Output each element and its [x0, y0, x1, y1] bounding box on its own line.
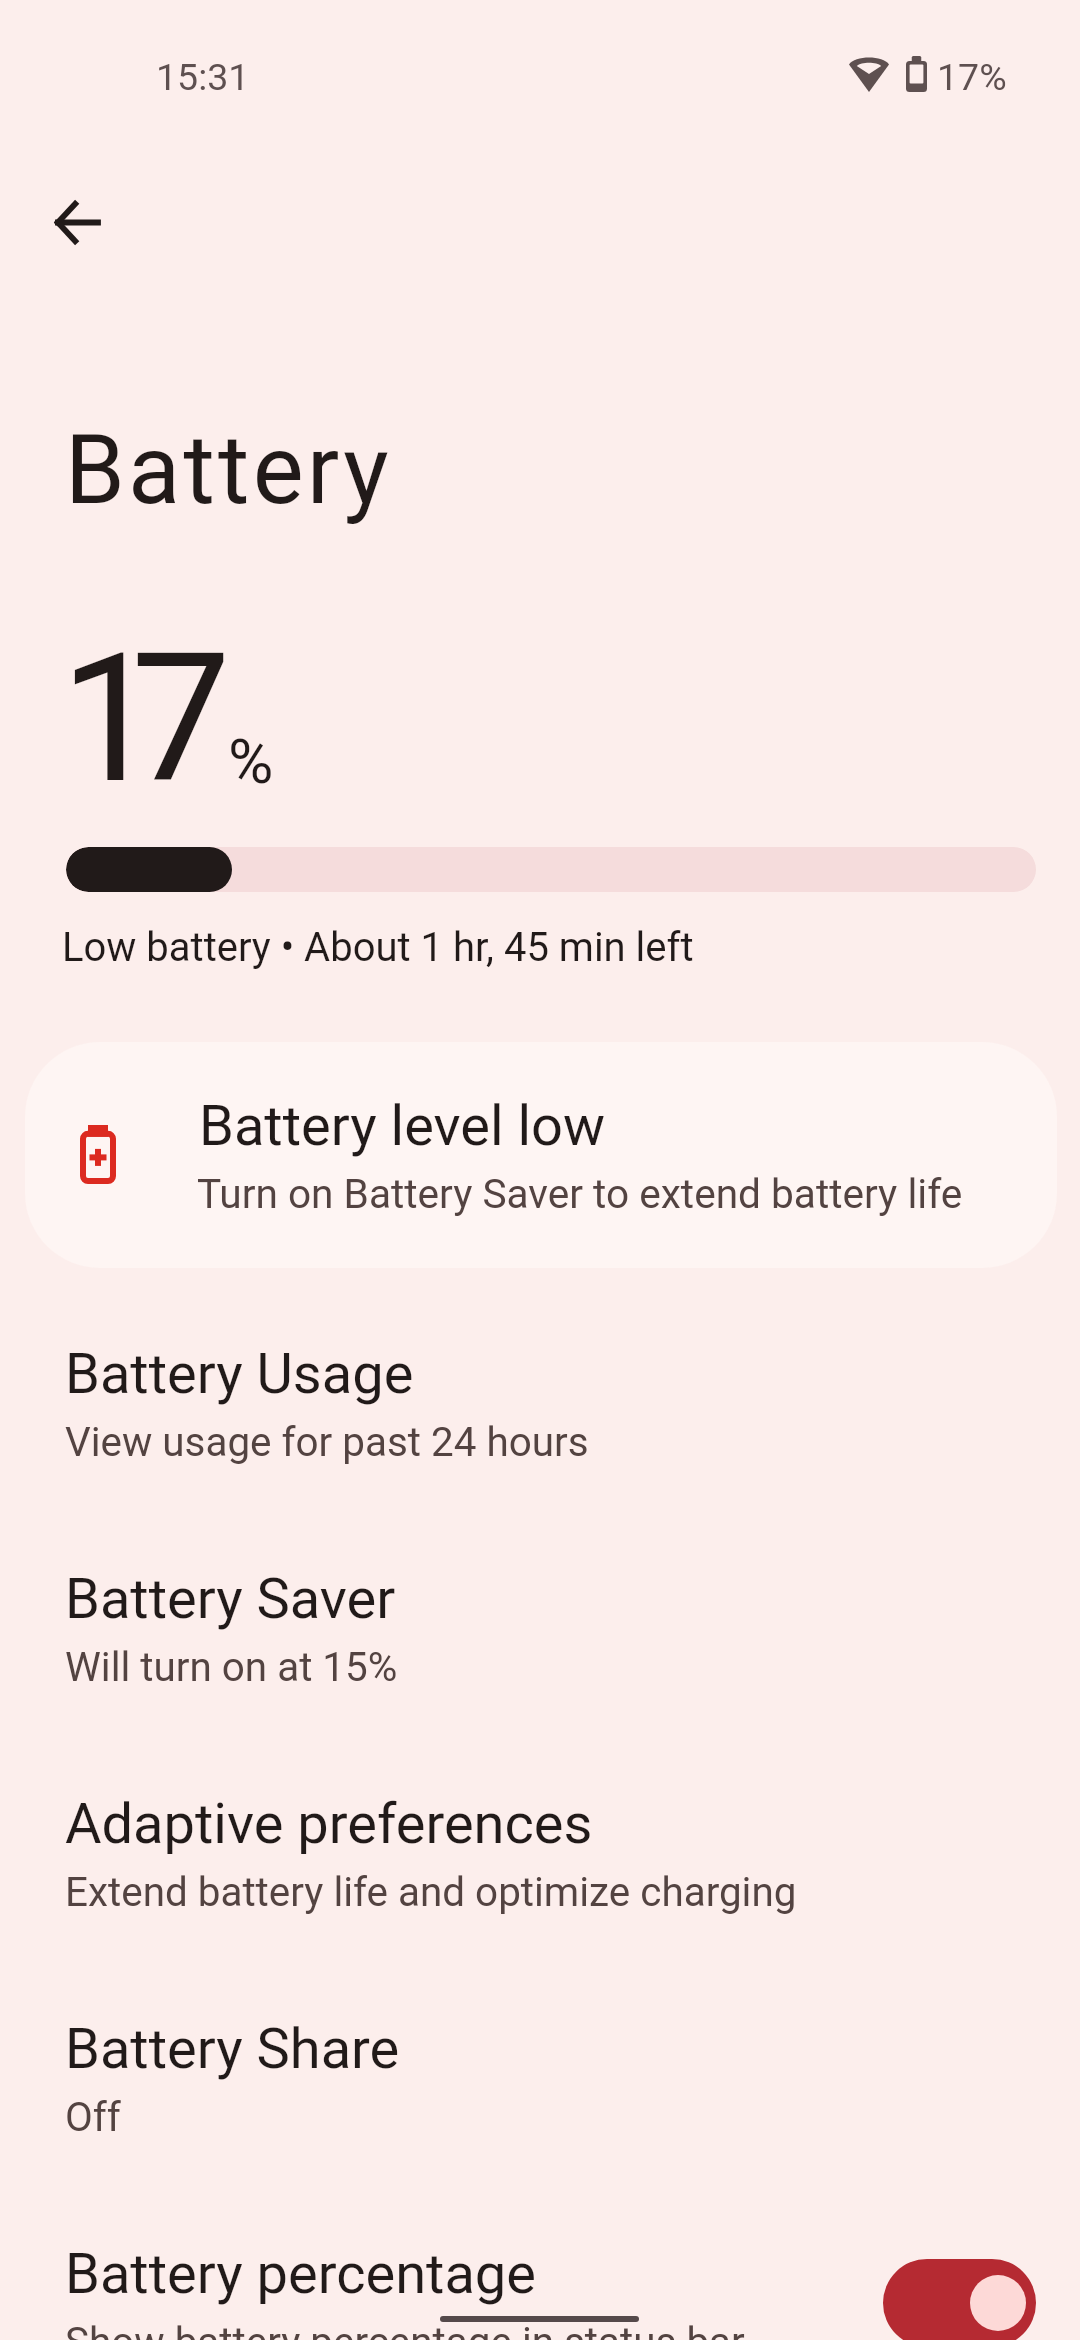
- staticText: Extend battery life and optimize chargin…: [65, 1868, 797, 1916]
- staticText: Off: [65, 2093, 121, 2141]
- staticText: Battery percentage: [65, 2241, 536, 2307]
- staticText: Adaptive preferences: [65, 1791, 593, 1857]
- staticText: 17%: [937, 55, 1007, 99]
- staticText: Battery Usage: [65, 1341, 414, 1407]
- button[interactable]: Battery Usage: [0, 1295, 1080, 1505]
- staticText: 15:31: [156, 55, 250, 99]
- button[interactable]: Adaptive preferences: [0, 1745, 1080, 1955]
- staticText: 7: [131, 614, 232, 824]
- staticText: 1: [60, 614, 161, 824]
- staticText: Turn on Battery Saver to extend battery …: [197, 1170, 963, 1218]
- button[interactable]: Battery level low: [25, 1042, 1057, 1268]
- button[interactable]: Battery percentage toggle, on: [883, 2259, 1036, 2340]
- staticText: Battery Share: [65, 2016, 400, 2082]
- button[interactable]: Battery percentage: [0, 2195, 1080, 2340]
- staticText: View usage for past 24 hours: [65, 1418, 589, 1466]
- button[interactable]: Battery Share: [0, 1970, 1080, 2180]
- staticText: %: [228, 725, 274, 798]
- staticText: Battery Saver: [65, 1566, 396, 1632]
- staticText: Battery level low: [199, 1093, 606, 1159]
- staticText: Battery: [65, 413, 392, 526]
- staticText: Will turn on at 15%: [65, 1643, 398, 1691]
- button[interactable]: Battery Saver: [0, 1520, 1080, 1730]
- staticText: Show battery percentage in status bar: [65, 2318, 745, 2340]
- button[interactable]: Back: [10, 156, 142, 288]
- staticText: Low battery • About 1 hr, 45 min left: [62, 924, 694, 971]
